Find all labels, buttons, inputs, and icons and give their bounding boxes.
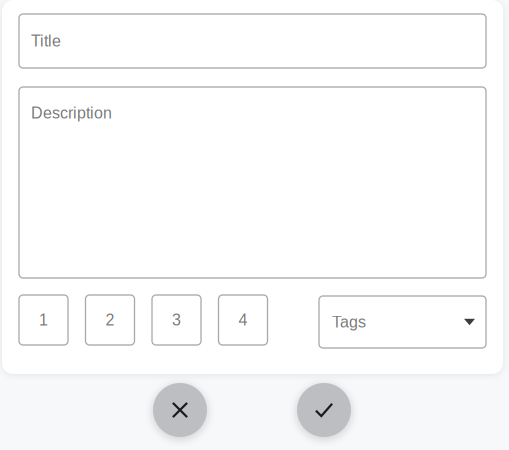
staticText: 2	[105, 311, 114, 329]
staticText: Title	[31, 32, 61, 50]
staticText: 4	[238, 311, 247, 329]
button[interactable]: Tags	[319, 296, 486, 348]
button[interactable]: Cancel	[153, 383, 207, 437]
staticText: Description	[31, 104, 112, 122]
staticText: Tags	[332, 313, 366, 331]
button[interactable]: 1	[19, 295, 68, 345]
button[interactable]: 2	[85, 295, 134, 345]
button[interactable]: Save	[297, 383, 351, 437]
staticText: 1	[39, 311, 48, 329]
staticText: 3	[172, 311, 181, 329]
button[interactable]: 3	[152, 295, 201, 345]
button[interactable]: 4	[218, 295, 267, 345]
